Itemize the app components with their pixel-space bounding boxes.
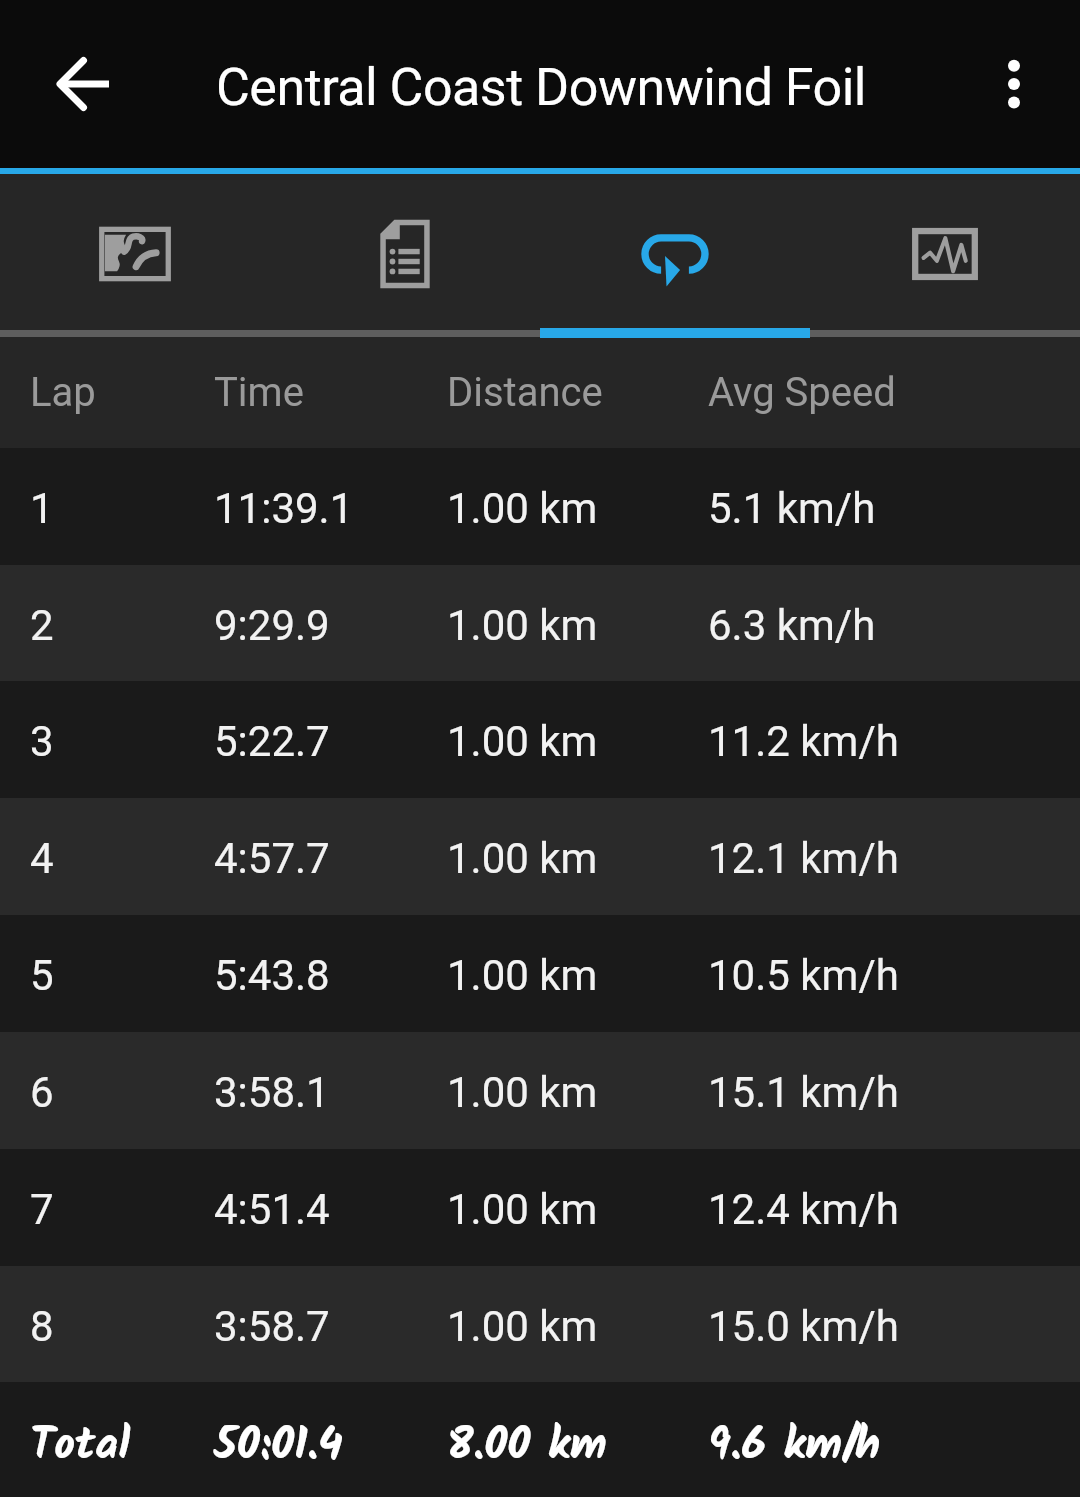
staticText: 2 [30,601,54,650]
button[interactable]: Total [0,1382,1080,1497]
staticText: 4 [30,834,54,883]
staticText: 4:51.4 [214,1185,330,1234]
button[interactable]: 6 [0,1032,1080,1149]
staticText: 6 [30,1068,54,1117]
button[interactable]: 5 [0,915,1080,1032]
staticText: 1.00 km [447,951,598,1000]
staticText: 5.1 km/h [708,484,876,533]
staticText: 15.0 km/h [708,1302,899,1351]
button[interactable]: Map [0,174,270,328]
button[interactable]: 1 [0,448,1080,565]
staticText: 12.1 km/h [708,834,899,883]
staticText: Time [214,369,304,416]
button[interactable]: 3 [0,681,1080,798]
staticText: Avg Speed [708,369,896,416]
staticText: 1 [30,484,54,533]
button[interactable]: 7 [0,1149,1080,1266]
staticText: 11.2 km/h [708,717,899,766]
staticText: 7 [30,1185,54,1234]
staticText: 5 [30,951,54,1000]
staticText: 50:01.4 [214,1411,343,1483]
staticText: 11:39.1 [214,484,354,533]
button[interactable]: Lap [0,338,1080,448]
staticText: 1.00 km [447,834,598,883]
button[interactable]: More options [978,48,1050,120]
staticText: Lap [30,369,96,416]
button[interactable]: Laps [540,174,810,328]
staticText: 12.4 km/h [708,1185,899,1234]
button[interactable]: 2 [0,565,1080,681]
button[interactable]: Details [270,174,540,328]
staticText: 3:58.1 [214,1068,330,1117]
staticText: 1.00 km [447,717,598,766]
staticText: Central Coast Downwind Foil [216,57,867,118]
staticText: 3 [30,717,54,766]
staticText: 3:58.7 [214,1302,330,1351]
staticText: 15.1 km/h [708,1068,899,1117]
button[interactable]: Navigate up [47,48,119,120]
staticText: 4:57.7 [214,834,330,883]
staticText: 5:43.8 [214,951,330,1000]
staticText: 1.00 km [447,1068,598,1117]
staticText: Total [30,1411,131,1483]
button[interactable]: 8 [0,1266,1080,1382]
staticText: 8.00 km [447,1411,607,1483]
button[interactable]: Graphs [810,174,1080,328]
button[interactable]: 4 [0,798,1080,915]
staticText: 1.00 km [447,601,598,650]
staticText: 6.3 km/h [708,601,876,650]
staticText: Distance [447,369,603,416]
staticText: 5:22.7 [214,717,330,766]
staticText: 1.00 km [447,1185,598,1234]
staticText: 8 [30,1302,54,1351]
staticText: 1.00 km [447,1302,598,1351]
staticText: 9:29.9 [214,601,330,650]
staticText: 1.00 km [447,484,598,533]
staticText: 10.5 km/h [708,951,899,1000]
staticText: 9.6 km/h [708,1411,881,1483]
